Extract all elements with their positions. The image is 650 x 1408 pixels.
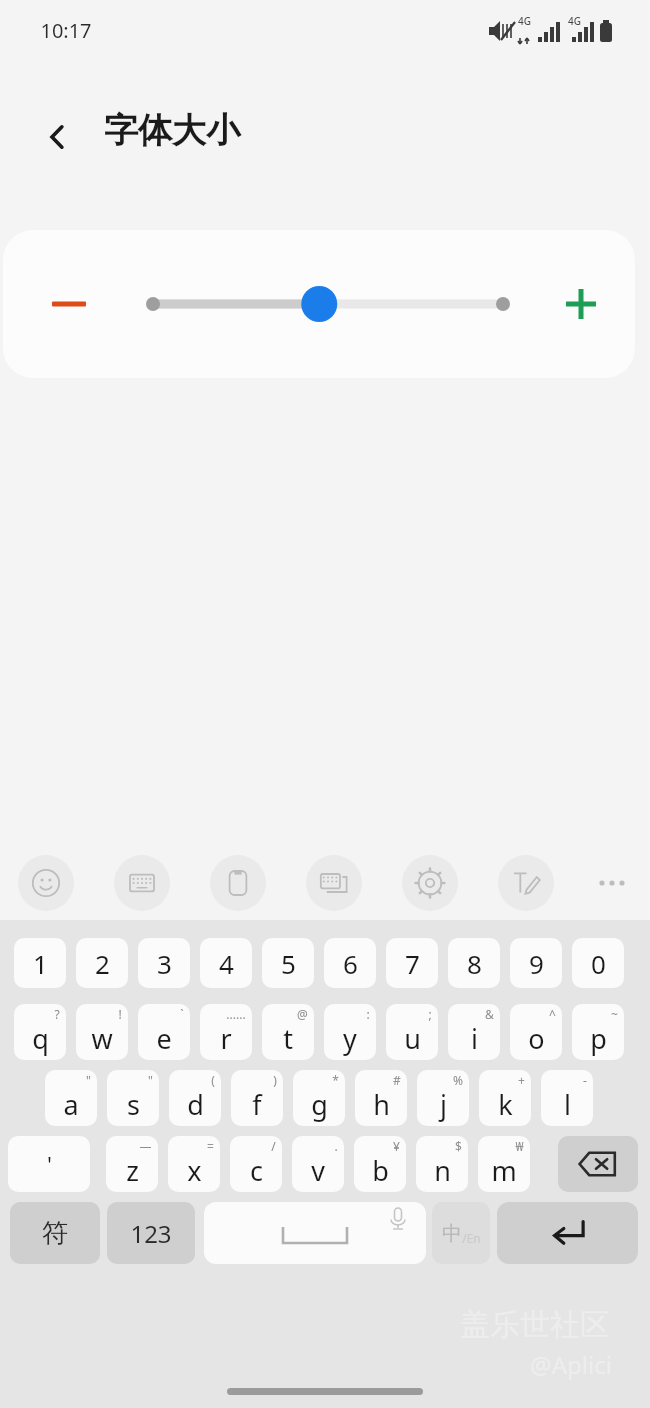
button[interactable]: ' [8, 1136, 90, 1192]
staticText: x [187, 1152, 202, 1189]
staticText: ! [118, 1006, 122, 1022]
button[interactable]: 2 [76, 938, 128, 988]
button[interactable]: More options [584, 855, 640, 911]
button[interactable]: * [293, 1070, 345, 1126]
staticText: t [283, 1020, 293, 1057]
button[interactable]: " [107, 1070, 159, 1126]
staticText: + [518, 1072, 525, 1088]
staticText: 0 [591, 946, 606, 981]
staticText: f [252, 1086, 262, 1123]
button[interactable]: Increase font size [551, 274, 611, 334]
staticText: 1 [33, 946, 48, 981]
button[interactable]: Back [26, 105, 90, 169]
button[interactable]: 123 [107, 1202, 195, 1264]
button[interactable]: Enter [497, 1202, 638, 1264]
staticText: ` [180, 1006, 184, 1022]
button[interactable]: # [355, 1070, 407, 1126]
staticText: b [372, 1152, 389, 1189]
button[interactable]: Handwriting [498, 855, 554, 911]
button[interactable]: 符 [10, 1202, 100, 1264]
button[interactable]: ¥ [354, 1136, 406, 1192]
button[interactable]: ) [231, 1070, 283, 1126]
button[interactable]: . [292, 1136, 344, 1192]
button[interactable]: Chinese English toggle [432, 1202, 490, 1264]
staticText: z [126, 1152, 139, 1189]
button[interactable]: ~ [572, 1004, 624, 1060]
button[interactable]: " [45, 1070, 97, 1126]
button[interactable]: Font size slider [131, 272, 525, 336]
button[interactable]: % [417, 1070, 469, 1126]
staticText: " [86, 1072, 91, 1088]
staticText: d [187, 1086, 204, 1123]
button[interactable]: + [479, 1070, 531, 1126]
staticText: ' [47, 1149, 52, 1179]
button[interactable]: ; [386, 1004, 438, 1060]
staticText: 字体大小 [104, 109, 240, 152]
staticText: — [139, 1138, 152, 1154]
button[interactable]: ₩ [478, 1136, 530, 1192]
staticText: 3 [157, 946, 172, 981]
staticText: o [528, 1020, 545, 1057]
button[interactable]: Clipboard [210, 855, 266, 911]
staticText: ( [211, 1072, 215, 1088]
staticText: l [564, 1086, 571, 1123]
staticText: ~ [611, 1006, 618, 1022]
button[interactable]: @ [262, 1004, 314, 1060]
button[interactable]: & [448, 1004, 500, 1060]
staticText: ^ [549, 1006, 556, 1022]
button[interactable]: ! [76, 1004, 128, 1060]
button[interactable]: ...... [200, 1004, 252, 1060]
button[interactable]: Keyboard [114, 855, 170, 911]
staticText: 7 [405, 946, 420, 981]
staticText: s [127, 1086, 140, 1123]
staticText: * [332, 1072, 339, 1088]
button[interactable]: $ [416, 1136, 468, 1192]
button[interactable]: Emoji [18, 855, 74, 911]
button[interactable]: 6 [324, 938, 376, 988]
staticText: a [63, 1086, 79, 1123]
button[interactable]: 8 [448, 938, 500, 988]
staticText: w [91, 1020, 113, 1057]
staticText: - [583, 1072, 587, 1088]
button[interactable]: 1 [14, 938, 66, 988]
button[interactable]: / [230, 1136, 282, 1192]
staticText: 10:17 [40, 17, 92, 44]
staticText: ) [273, 1072, 277, 1088]
staticText: m [491, 1152, 517, 1189]
button[interactable]: ^ [510, 1004, 562, 1060]
staticText: 123 [130, 1217, 172, 1250]
staticText: % [453, 1072, 463, 1088]
staticText: = [207, 1138, 214, 1154]
staticText: k [498, 1086, 513, 1123]
button[interactable]: - [541, 1070, 593, 1126]
button[interactable]: Keyboard modes [306, 855, 362, 911]
staticText: /En [462, 1230, 481, 1246]
button[interactable]: ? [14, 1004, 66, 1060]
button[interactable]: 3 [138, 938, 190, 988]
button[interactable]: 9 [510, 938, 562, 988]
staticText: 中 [442, 1221, 462, 1246]
staticText: . [334, 1138, 338, 1154]
button[interactable]: 0 [572, 938, 624, 988]
button[interactable]: = [168, 1136, 220, 1192]
staticText: g [311, 1086, 328, 1123]
button[interactable]: 4 [200, 938, 252, 988]
button[interactable]: ` [138, 1004, 190, 1060]
button[interactable]: Decrease font size [39, 274, 99, 334]
button[interactable]: ( [169, 1070, 221, 1126]
button[interactable]: Backspace [558, 1136, 638, 1192]
button[interactable]: : [324, 1004, 376, 1060]
button[interactable]: 7 [386, 938, 438, 988]
staticText: 9 [529, 946, 544, 981]
button[interactable]: — [106, 1136, 158, 1192]
staticText: v [311, 1152, 325, 1189]
staticText: / [271, 1138, 276, 1154]
button[interactable]: 5 [262, 938, 314, 988]
staticText: : [366, 1006, 370, 1022]
staticText: p [590, 1020, 607, 1057]
staticText: 2 [95, 946, 110, 981]
staticText: & [485, 1006, 494, 1022]
button[interactable]: Settings [402, 855, 458, 911]
button[interactable]: Space [204, 1202, 426, 1264]
staticText: ¥ [393, 1138, 400, 1154]
